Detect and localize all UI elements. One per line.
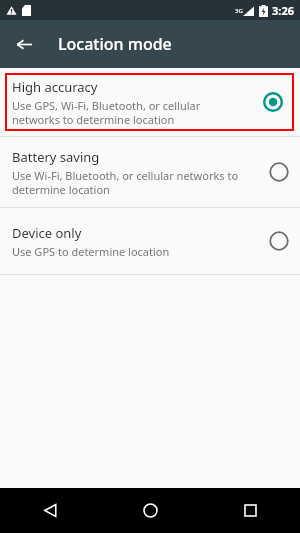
other: Not selected <box>268 230 290 252</box>
staticText: 3:26 <box>272 3 294 18</box>
staticText: Battery saving <box>12 148 100 166</box>
staticText: Use Wi-Fi, Bluetooth, or cellular networ… <box>12 168 239 197</box>
button[interactable]: Back <box>0 20 48 68</box>
staticText: Device only <box>12 224 82 242</box>
button[interactable]: Battery saving <box>0 137 300 207</box>
button[interactable]: Recent apps <box>200 488 300 533</box>
button[interactable]: Device only <box>0 208 300 274</box>
button[interactable]: Back <box>0 488 100 533</box>
staticText: Use GPS to determine location <box>12 244 170 259</box>
staticText: High accuracy <box>12 78 98 96</box>
button[interactable]: Home <box>100 488 200 533</box>
other: Not selected <box>268 161 290 183</box>
button[interactable]: High accuracy <box>5 73 294 131</box>
staticText: Location mode <box>58 33 172 55</box>
other: Selected <box>262 91 284 113</box>
staticText: 3G <box>235 7 243 15</box>
staticText: Use GPS, Wi-Fi, Bluetooth, or cellular n… <box>12 98 201 127</box>
